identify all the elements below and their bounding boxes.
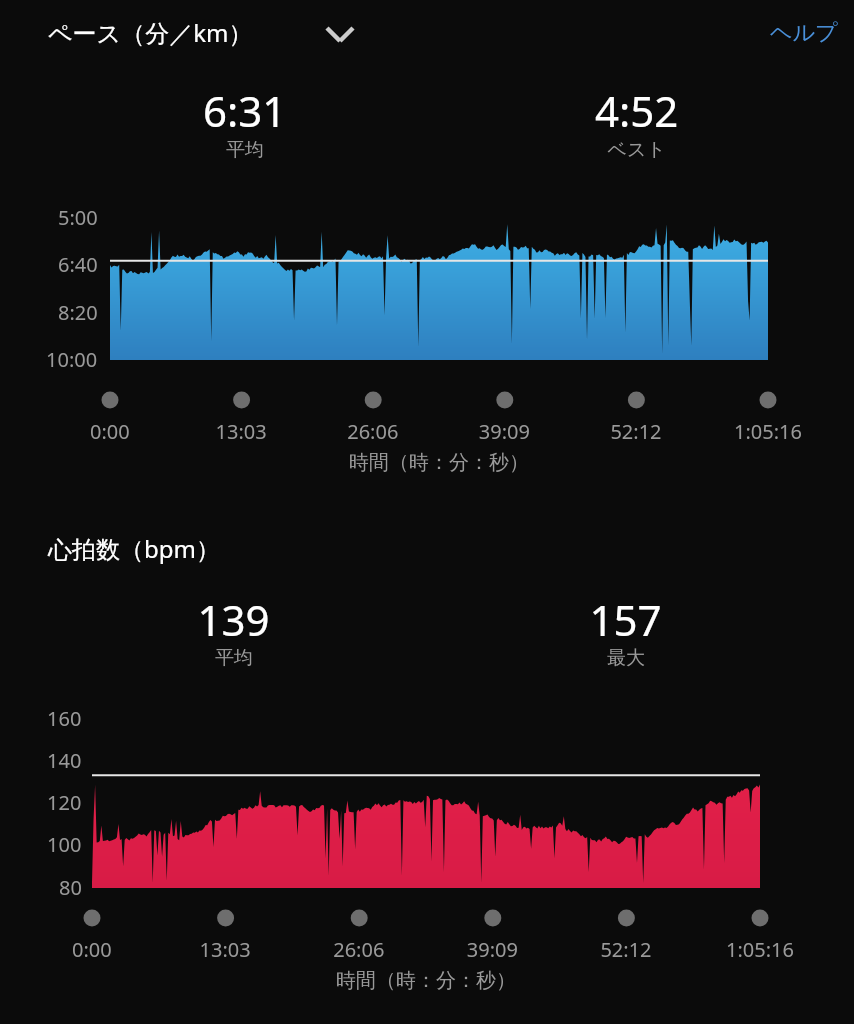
button[interactable]: ヘルプ	[740, 10, 844, 56]
button[interactable]: ペース（分／km）指標を切り替え	[40, 8, 370, 56]
